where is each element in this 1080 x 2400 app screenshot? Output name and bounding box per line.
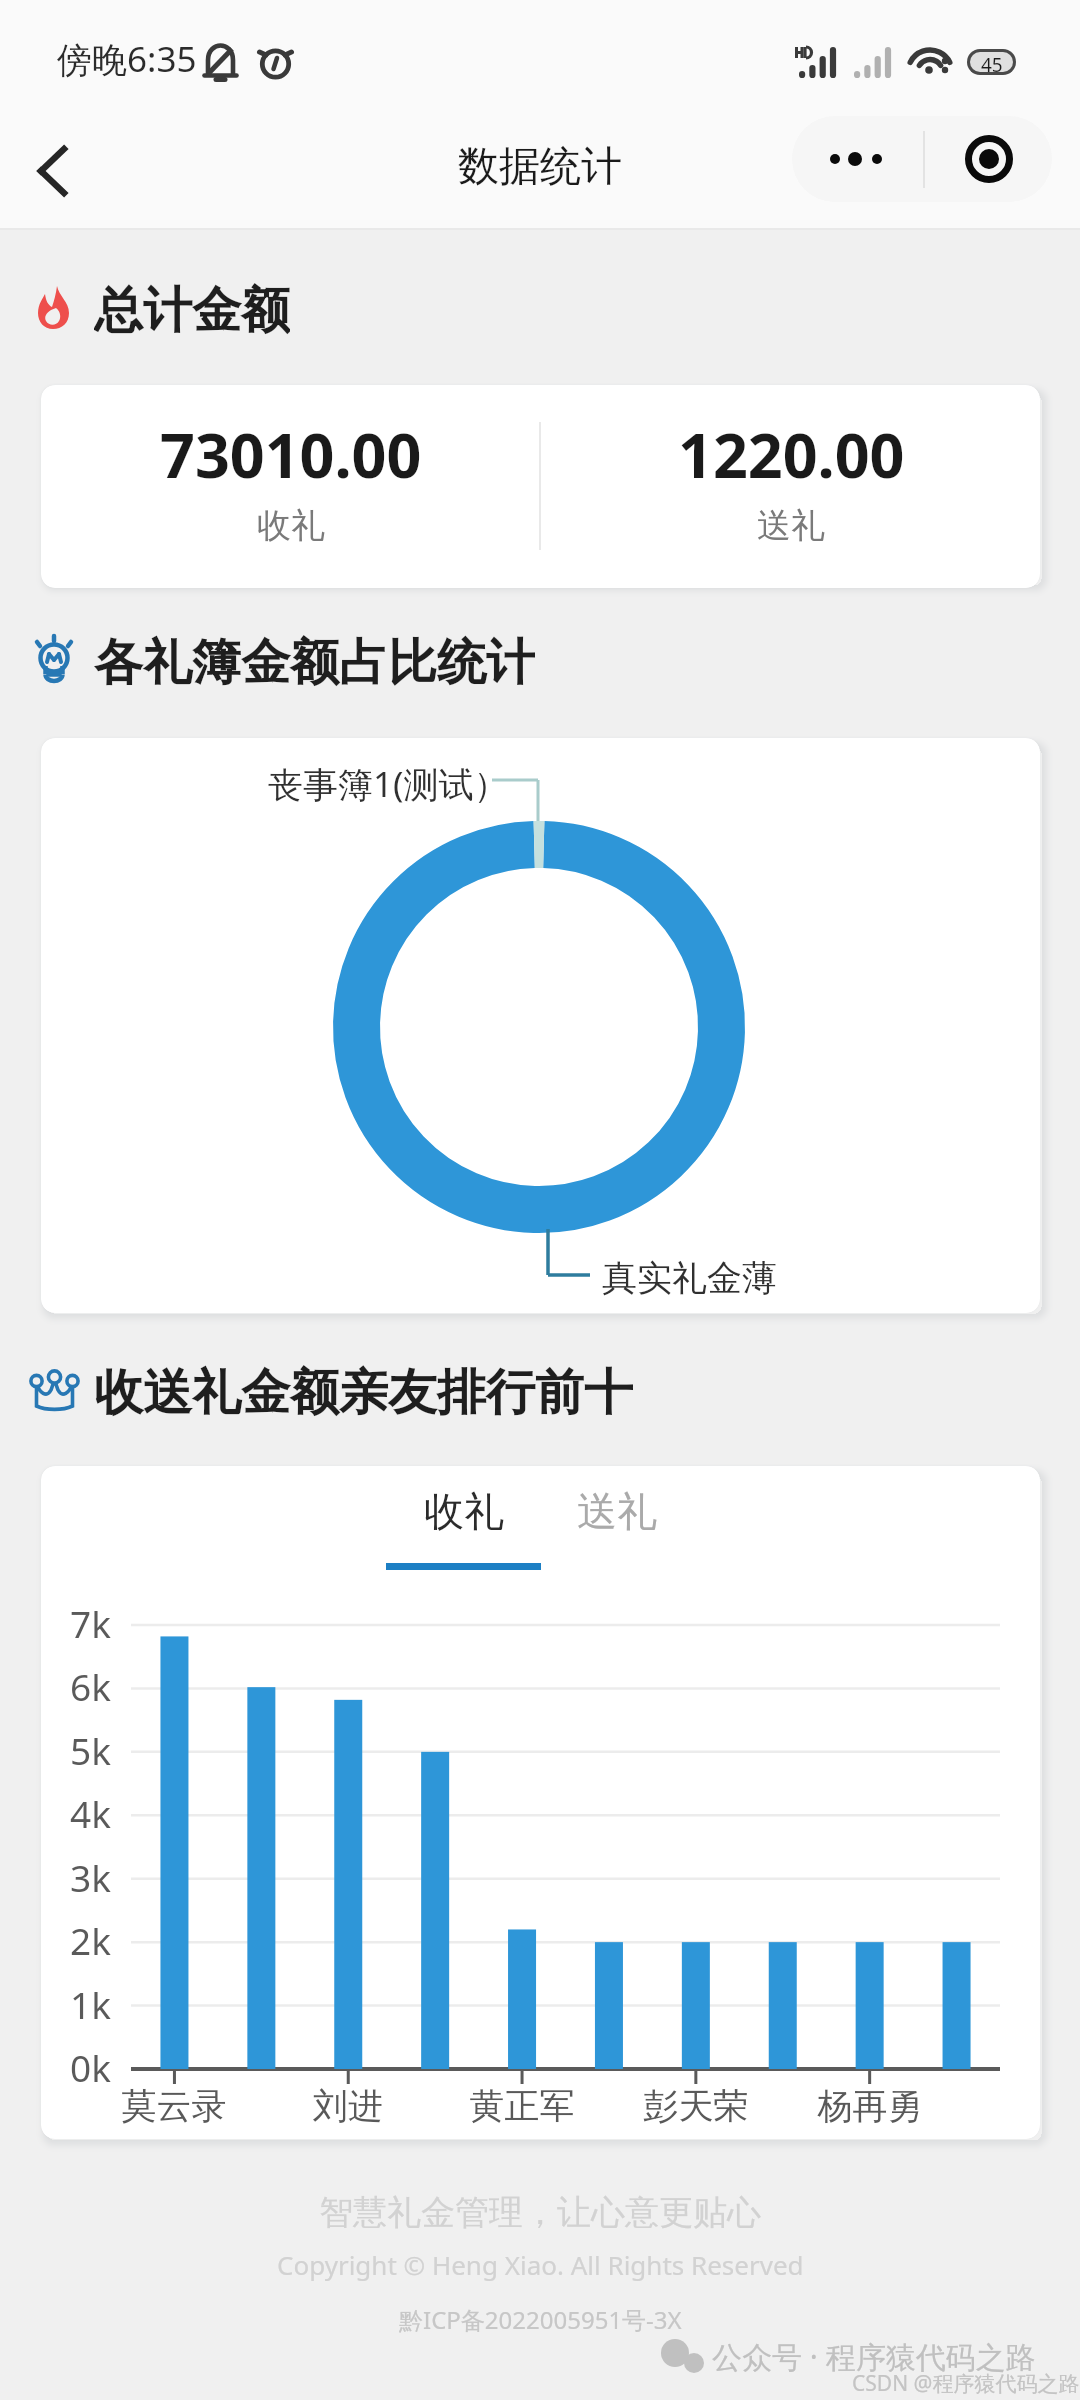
staticText: 莫云录 (89, 2084, 259, 2128)
button[interactable]: Close mini program (925, 116, 1052, 202)
staticText: 3k (61, 1852, 111, 1902)
button[interactable]: More options (792, 116, 923, 202)
staticText: 傍晚6:35 (57, 35, 197, 83)
button[interactable]: 1220.00 (541, 385, 1040, 588)
button[interactable]: Back (0, 112, 106, 230)
staticText: 送礼 (577, 1486, 657, 1536)
staticText: 6k (61, 1661, 111, 1711)
staticText: Copyright © Heng Xiao. All Rights Reserv… (277, 2247, 804, 2282)
button[interactable]: 收礼 (386, 1472, 541, 1589)
staticText: 智慧礼金管理，让心意更贴心 (319, 2191, 761, 2234)
staticText: 各礼簿金额占比统计 (94, 632, 535, 688)
staticText: 45 (981, 52, 1003, 72)
staticText: 公众号 · 程序猿代码之路 (712, 2336, 1036, 2377)
button[interactable]: 73010.00 (41, 385, 541, 588)
button[interactable]: 送礼 (539, 1472, 694, 1589)
staticText: 0k (61, 2042, 111, 2092)
staticText: 5k (61, 1725, 111, 1775)
staticText: 丧事簿1(测试） (268, 760, 509, 808)
staticText: 收礼 (424, 1486, 504, 1536)
staticText: 真实礼金薄 (602, 1256, 777, 1300)
staticText: 73010.00 (160, 413, 422, 496)
staticText: 总计金额 (94, 280, 290, 336)
staticText: 彭天荣 (611, 2084, 781, 2128)
staticText: 黔ICP备2022005951号-3X (399, 2303, 682, 2336)
staticText: 收送礼金额亲友排行前十 (94, 1362, 633, 1418)
staticText: 7k (61, 1598, 111, 1648)
staticText: 1220.00 (678, 413, 905, 496)
staticText: 送礼 (757, 504, 825, 547)
staticText: 收礼 (257, 504, 325, 547)
staticText: 2k (61, 1915, 111, 1965)
staticText: 杨再勇 (785, 2084, 955, 2128)
staticText: 刘进 (263, 2084, 433, 2128)
staticText: 4k (61, 1788, 111, 1838)
staticText: 黄正军 (437, 2084, 607, 2128)
staticText: 1k (61, 1979, 111, 2029)
staticText: 数据统计 (458, 141, 622, 193)
staticText: CSDN @程序猿代码之路 (852, 2369, 1080, 2398)
